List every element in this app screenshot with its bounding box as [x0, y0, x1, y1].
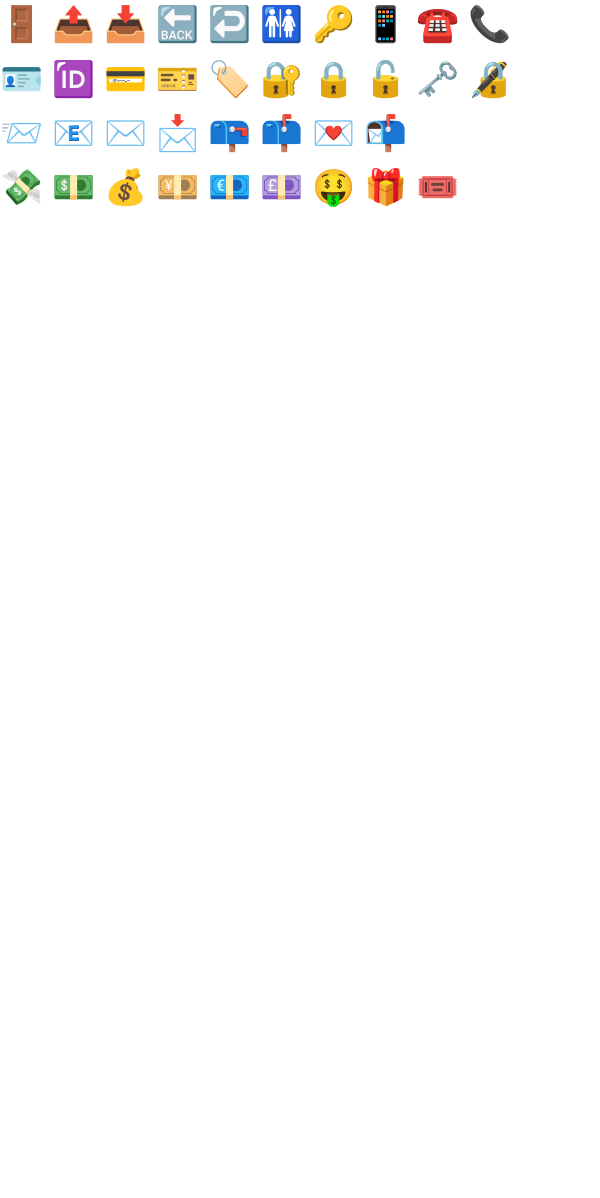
staticText: 💸 💵 💰 💴 💶 💷 🤑 🎁 🎟️: [0, 162, 459, 208]
staticText: 🚪 📤 📥 🔙 ↩️ 🚻 🔑 📱 ☎️ 📞: [0, 0, 511, 46]
staticText: 📨 📧 ✉️ 📩 📪 📫 💌 📬: [0, 108, 407, 154]
staticText: 🪪 🆔 💳 🎫 🏷️ 🔐 🔒 🔓 🗝️ 🔏: [0, 54, 511, 100]
